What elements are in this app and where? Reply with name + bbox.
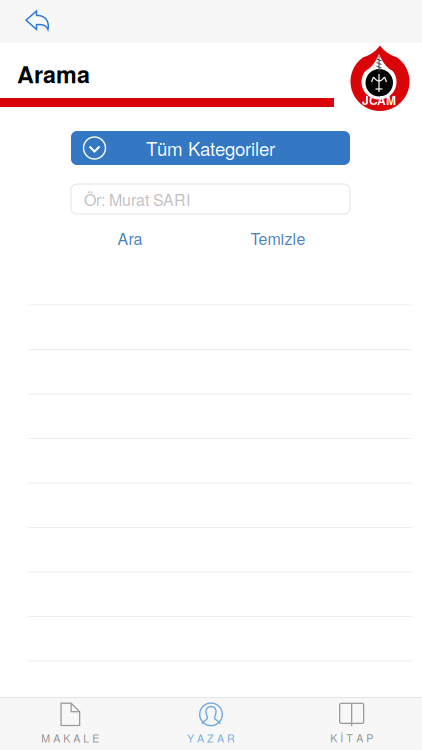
staticText: Ara bbox=[117, 226, 142, 249]
button[interactable]: Yazar ara bbox=[71, 184, 350, 214]
staticText: Y A Z A R bbox=[187, 730, 235, 746]
staticText: Temizle bbox=[250, 226, 305, 249]
staticText: JCAM bbox=[362, 91, 396, 109]
button[interactable]: Y A Z A R bbox=[141, 696, 281, 750]
staticText: Arama bbox=[17, 57, 90, 90]
button[interactable]: Ara bbox=[65, 225, 195, 251]
button[interactable]: M A K A L E bbox=[0, 696, 141, 750]
button[interactable]: K İ T A P bbox=[281, 697, 422, 750]
staticText: Ör: Murat SARI bbox=[84, 187, 190, 210]
button[interactable]: Tüm Kategoriler bbox=[71, 131, 350, 165]
staticText: Tüm Kategoriler bbox=[146, 135, 275, 161]
staticText: K İ T A P bbox=[330, 730, 373, 745]
staticText: M A K A L E bbox=[41, 730, 99, 745]
button[interactable]: Back bbox=[15, 4, 59, 38]
button[interactable]: Temizle bbox=[195, 225, 361, 251]
